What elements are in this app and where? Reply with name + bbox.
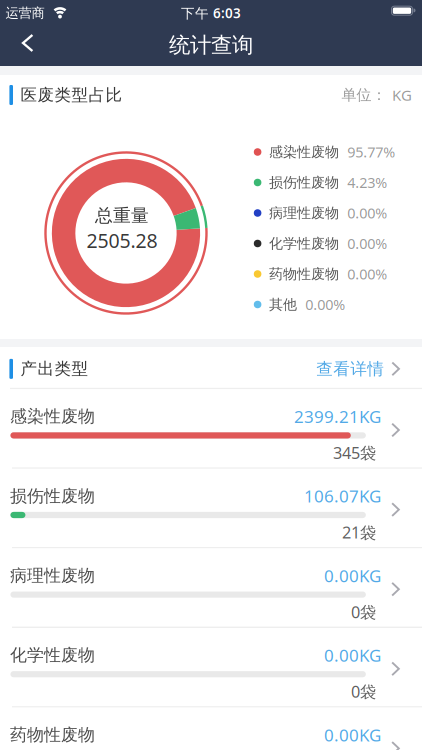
staticText: 下午 6:03 <box>181 4 241 22</box>
staticText: 损伤性废物 <box>269 174 339 191</box>
staticText: 产出类型 <box>20 358 88 379</box>
button[interactable]: 病理性废物 <box>0 548 422 628</box>
staticText: 药物性废物 <box>10 724 95 745</box>
staticText: 查看详情 <box>316 358 384 379</box>
button[interactable]: 查看详情 <box>316 358 422 379</box>
staticText: 2399.21KG <box>294 405 381 428</box>
staticText: 单位： <box>341 86 386 104</box>
staticText: 0.00KG <box>324 644 381 667</box>
staticText: 0.00KG <box>324 723 381 746</box>
staticText: 0袋 <box>351 601 376 623</box>
staticText: 病理性废物 <box>269 204 339 222</box>
staticText: 运营商 <box>5 5 44 21</box>
staticText: 损伤性废物 <box>10 485 95 507</box>
staticText: 0.00% <box>305 295 345 314</box>
staticText: 0.00% <box>347 264 387 284</box>
staticText: 345袋 <box>333 442 376 464</box>
button[interactable]: 药物性废物 <box>0 708 422 750</box>
staticText: 4.23% <box>347 173 387 192</box>
button[interactable]: 返回 <box>0 26 34 60</box>
staticText: 病理性废物 <box>10 565 95 586</box>
staticText: 医废类型占比 <box>20 85 122 105</box>
staticText: 化学性废物 <box>269 235 339 252</box>
staticText: 2505.28 <box>86 227 157 254</box>
staticText: 药物性废物 <box>269 265 339 283</box>
staticText: 95.77% <box>347 142 395 162</box>
staticText: 21袋 <box>342 521 376 543</box>
staticText: 0.00% <box>347 234 387 253</box>
staticText: 0.00% <box>347 203 387 223</box>
staticText: 106.07KG <box>304 484 381 508</box>
button[interactable]: 感染性废物 <box>0 389 422 469</box>
staticText: 0袋 <box>351 680 376 703</box>
staticText: KG <box>392 85 412 105</box>
staticText: 化学性废物 <box>10 645 95 666</box>
staticText: 0.00KG <box>324 564 381 587</box>
staticText: 统计查询 <box>169 31 253 58</box>
staticText: 感染性废物 <box>10 406 95 427</box>
staticText: 其他 <box>269 296 297 313</box>
button[interactable]: 化学性废物 <box>0 628 422 708</box>
button[interactable]: 损伤性废物 <box>0 469 422 548</box>
staticText: 总重量 <box>95 204 149 227</box>
staticText: 感染性废物 <box>269 143 339 161</box>
